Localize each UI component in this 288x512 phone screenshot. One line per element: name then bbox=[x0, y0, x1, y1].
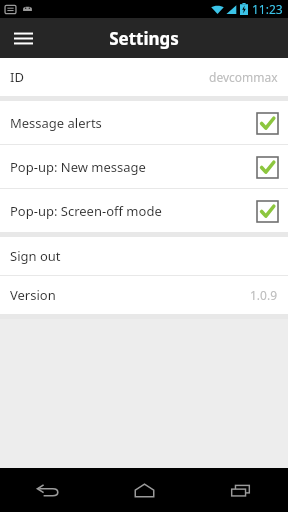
staticText: ID bbox=[10, 68, 24, 86]
staticText: Settings bbox=[109, 27, 179, 50]
button[interactable]: Sign out bbox=[0, 237, 288, 275]
button[interactable]: Open navigation menu bbox=[0, 18, 46, 58]
staticText: devcommax bbox=[209, 69, 278, 85]
staticText: 1.0.9 bbox=[250, 287, 278, 303]
staticText: Pop-up: New message bbox=[10, 158, 146, 176]
button[interactable]: Back bbox=[0, 468, 96, 512]
staticText: 11:23 bbox=[252, 1, 283, 17]
button[interactable]: Pop-up: New message bbox=[0, 145, 288, 188]
button[interactable]: Home bbox=[96, 468, 192, 512]
button[interactable]: ID bbox=[0, 58, 288, 96]
button[interactable]: Message alerts bbox=[0, 101, 288, 144]
staticText: Pop-up: Screen-off mode bbox=[10, 202, 162, 220]
staticText: Version bbox=[10, 286, 56, 304]
staticText: Sign out bbox=[10, 247, 61, 265]
staticText: Message alerts bbox=[10, 114, 102, 132]
button[interactable]: Recent apps bbox=[192, 468, 288, 512]
button[interactable]: Version bbox=[0, 276, 288, 314]
button[interactable]: Toggle setting bbox=[256, 156, 278, 178]
button[interactable]: Toggle setting bbox=[256, 200, 278, 222]
button[interactable]: Toggle setting bbox=[256, 112, 278, 134]
button[interactable]: Pop-up: Screen-off mode bbox=[0, 189, 288, 232]
